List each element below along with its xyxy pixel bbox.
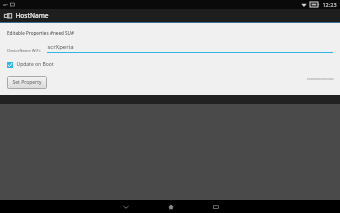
staticText: Set Property xyxy=(12,79,42,86)
button[interactable]: Set Property xyxy=(7,76,47,89)
staticText: DeviceName WiFi: xyxy=(7,48,41,53)
staticText: Editable Properties #need SU# xyxy=(7,30,74,36)
button[interactable]: Recent apps xyxy=(193,200,238,213)
staticText: scrXperia xyxy=(47,43,74,51)
button[interactable]: Home xyxy=(148,200,193,213)
button[interactable]: Hide keyboard xyxy=(103,200,148,213)
staticText: xxxxxxxxxxxxxxxx xyxy=(307,77,334,81)
staticText: Update on Boot xyxy=(16,61,54,68)
staticText: HostName xyxy=(15,11,49,20)
button[interactable]: App icon xyxy=(0,9,340,22)
button[interactable]: Update on Boot xyxy=(7,61,54,68)
staticText: 12:23 xyxy=(322,1,337,8)
button[interactable]: scrXperia xyxy=(47,43,333,53)
other: App icon xyxy=(4,12,12,20)
